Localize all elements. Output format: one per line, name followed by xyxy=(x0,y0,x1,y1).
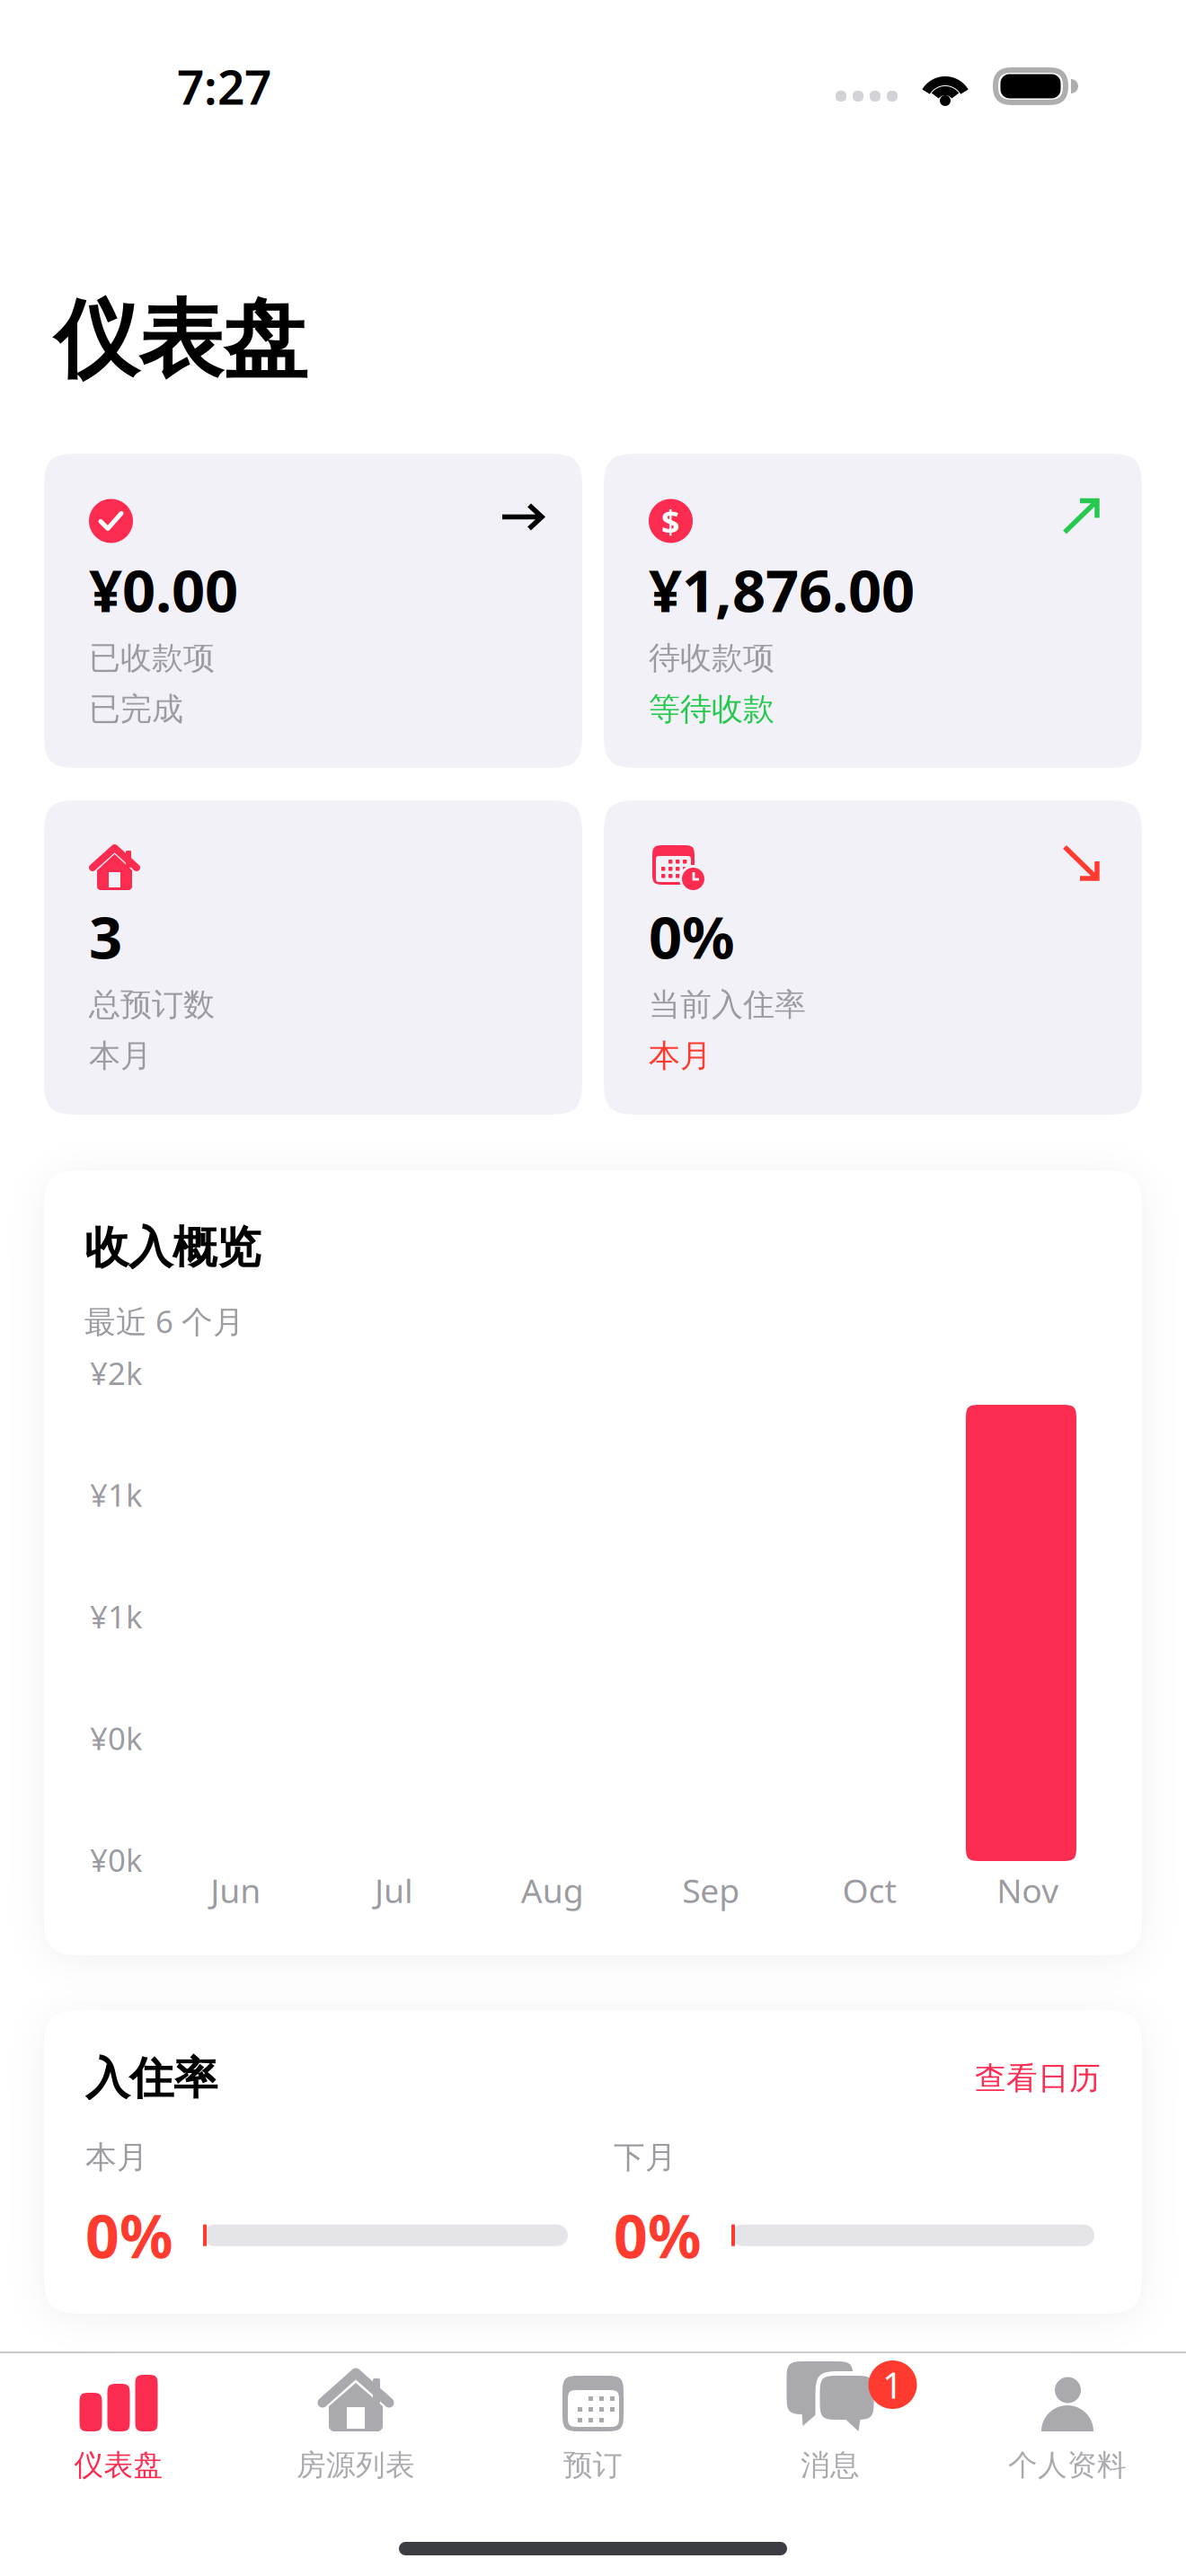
staticText: 等待收款 xyxy=(649,689,774,729)
button[interactable]: $ xyxy=(604,454,1142,768)
staticText: 入住率 xyxy=(85,2051,217,2106)
staticText: 本月 xyxy=(85,2138,148,2177)
staticText: 收入概览 xyxy=(84,1220,261,1276)
staticText: 本月 xyxy=(89,1036,152,1076)
staticText: Jun xyxy=(210,1867,261,1913)
button[interactable]: 3 xyxy=(44,800,582,1115)
button[interactable]: 个人资料 xyxy=(949,2353,1186,2510)
button[interactable]: ¥0.00 xyxy=(44,454,582,768)
staticText: 当前入住率 xyxy=(649,985,806,1024)
staticText: 最近 6 个月 xyxy=(84,1300,244,1342)
staticText: 已完成 xyxy=(89,689,183,729)
button[interactable]: 仪表盘 xyxy=(0,2353,237,2510)
button[interactable]: 房源列表 xyxy=(237,2353,474,2510)
button[interactable]: 预订 xyxy=(474,2353,712,2510)
staticText: 房源列表 xyxy=(296,2447,415,2484)
staticText: ¥0.00 xyxy=(89,550,238,629)
staticText: 查看日历 xyxy=(975,2059,1101,2098)
staticText: ¥1k xyxy=(90,1473,143,1516)
staticText: Jul xyxy=(375,1867,413,1913)
staticText: 3 xyxy=(89,896,122,976)
staticText: 个人资料 xyxy=(1008,2447,1127,2484)
staticText: 总预订数 xyxy=(89,985,215,1024)
button[interactable]: 查看日历 xyxy=(975,2059,1101,2098)
staticText: 已收款项 xyxy=(89,638,215,678)
staticText: 0% xyxy=(85,2195,173,2276)
staticText: 仪表盘 xyxy=(74,2447,163,2484)
staticText: 0% xyxy=(614,2195,702,2276)
staticText: 预订 xyxy=(563,2447,623,2484)
staticText: ¥2k xyxy=(90,1352,143,1394)
staticText: 消息 xyxy=(801,2447,860,2484)
staticText: 下月 xyxy=(614,2138,677,2177)
staticText: Sep xyxy=(682,1867,740,1913)
staticText: ¥0k xyxy=(90,1839,143,1881)
button[interactable]: 1 xyxy=(712,2353,949,2510)
button[interactable]: 0% xyxy=(604,800,1142,1115)
staticText: 仪表盘 xyxy=(54,287,307,393)
staticText: 本月 xyxy=(649,1036,712,1076)
staticText: ¥1,876.00 xyxy=(649,550,915,629)
staticText: 7:27 xyxy=(177,54,271,119)
staticText: ¥0k xyxy=(90,1717,143,1759)
staticText: $ xyxy=(661,499,680,543)
staticText: Oct xyxy=(842,1867,896,1913)
staticText: Nov xyxy=(997,1867,1059,1913)
staticText: 待收款项 xyxy=(649,638,774,678)
staticText: 1 xyxy=(882,2360,903,2409)
staticText: ¥1k xyxy=(90,1595,143,1638)
staticText: 0% xyxy=(649,896,735,976)
staticText: Aug xyxy=(521,1867,584,1913)
